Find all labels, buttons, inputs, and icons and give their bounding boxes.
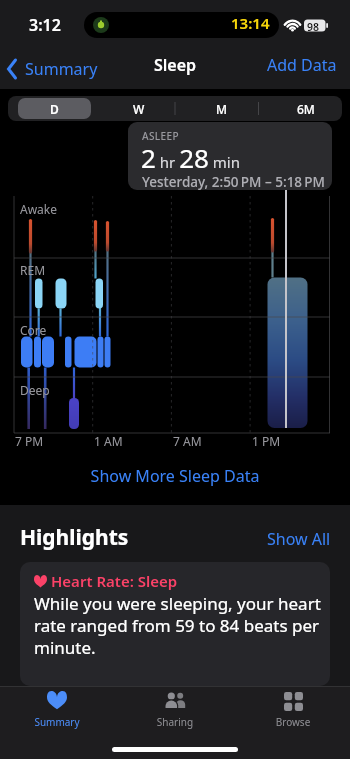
staticText: 13:14: [231, 13, 270, 33]
staticText: D: [50, 101, 59, 117]
staticText: Summary: [25, 58, 98, 80]
staticText: Highlights: [20, 523, 129, 552]
button[interactable]: 6M: [269, 96, 342, 121]
button[interactable]: Heart Rate: Sleep: [20, 562, 330, 686]
button[interactable]: M: [185, 96, 258, 121]
staticText: Core: [20, 322, 47, 338]
staticText: 2 hr 28 min: [141, 140, 240, 175]
button[interactable]: Browse: [258, 688, 328, 730]
button[interactable]: Summary: [6, 58, 98, 80]
button[interactable]: W: [102, 96, 175, 121]
staticText: Heart Rate: Sleep: [51, 571, 178, 591]
staticText: While you were sleeping, your heart rate…: [34, 592, 326, 659]
staticText: 98: [307, 20, 320, 34]
staticText: 7 PM: [15, 433, 44, 449]
staticText: W: [133, 101, 145, 117]
staticText: Add Data: [267, 54, 337, 76]
staticText: Deep: [20, 382, 50, 398]
staticText: 7 AM: [173, 433, 202, 449]
button[interactable]: Add Data: [261, 53, 337, 77]
staticText: Show All: [267, 528, 331, 550]
staticText: Awake: [20, 201, 58, 217]
button[interactable]: Show All: [251, 528, 331, 550]
staticText: M: [216, 101, 228, 117]
staticText: 1 AM: [94, 433, 123, 449]
staticText: REM: [20, 262, 46, 278]
staticText: Yesterday, 2:50 PM – 5:18 PM: [142, 173, 325, 190]
staticText: 3:12: [29, 14, 61, 36]
button[interactable]: [18, 98, 91, 119]
staticText: Summary: [22, 715, 92, 729]
button[interactable]: Sharing: [140, 688, 210, 730]
button[interactable]: D: [18, 96, 91, 121]
button[interactable]: Summary: [22, 688, 92, 730]
staticText: ASLEEP: [142, 129, 180, 143]
staticText: Browse: [258, 715, 328, 729]
staticText: Sleep: [0, 54, 350, 76]
button[interactable]: Show More Sleep Data: [0, 465, 350, 487]
staticText: 6M: [297, 101, 315, 117]
staticText: 1 PM: [252, 433, 281, 449]
staticText: Sharing: [140, 715, 210, 729]
